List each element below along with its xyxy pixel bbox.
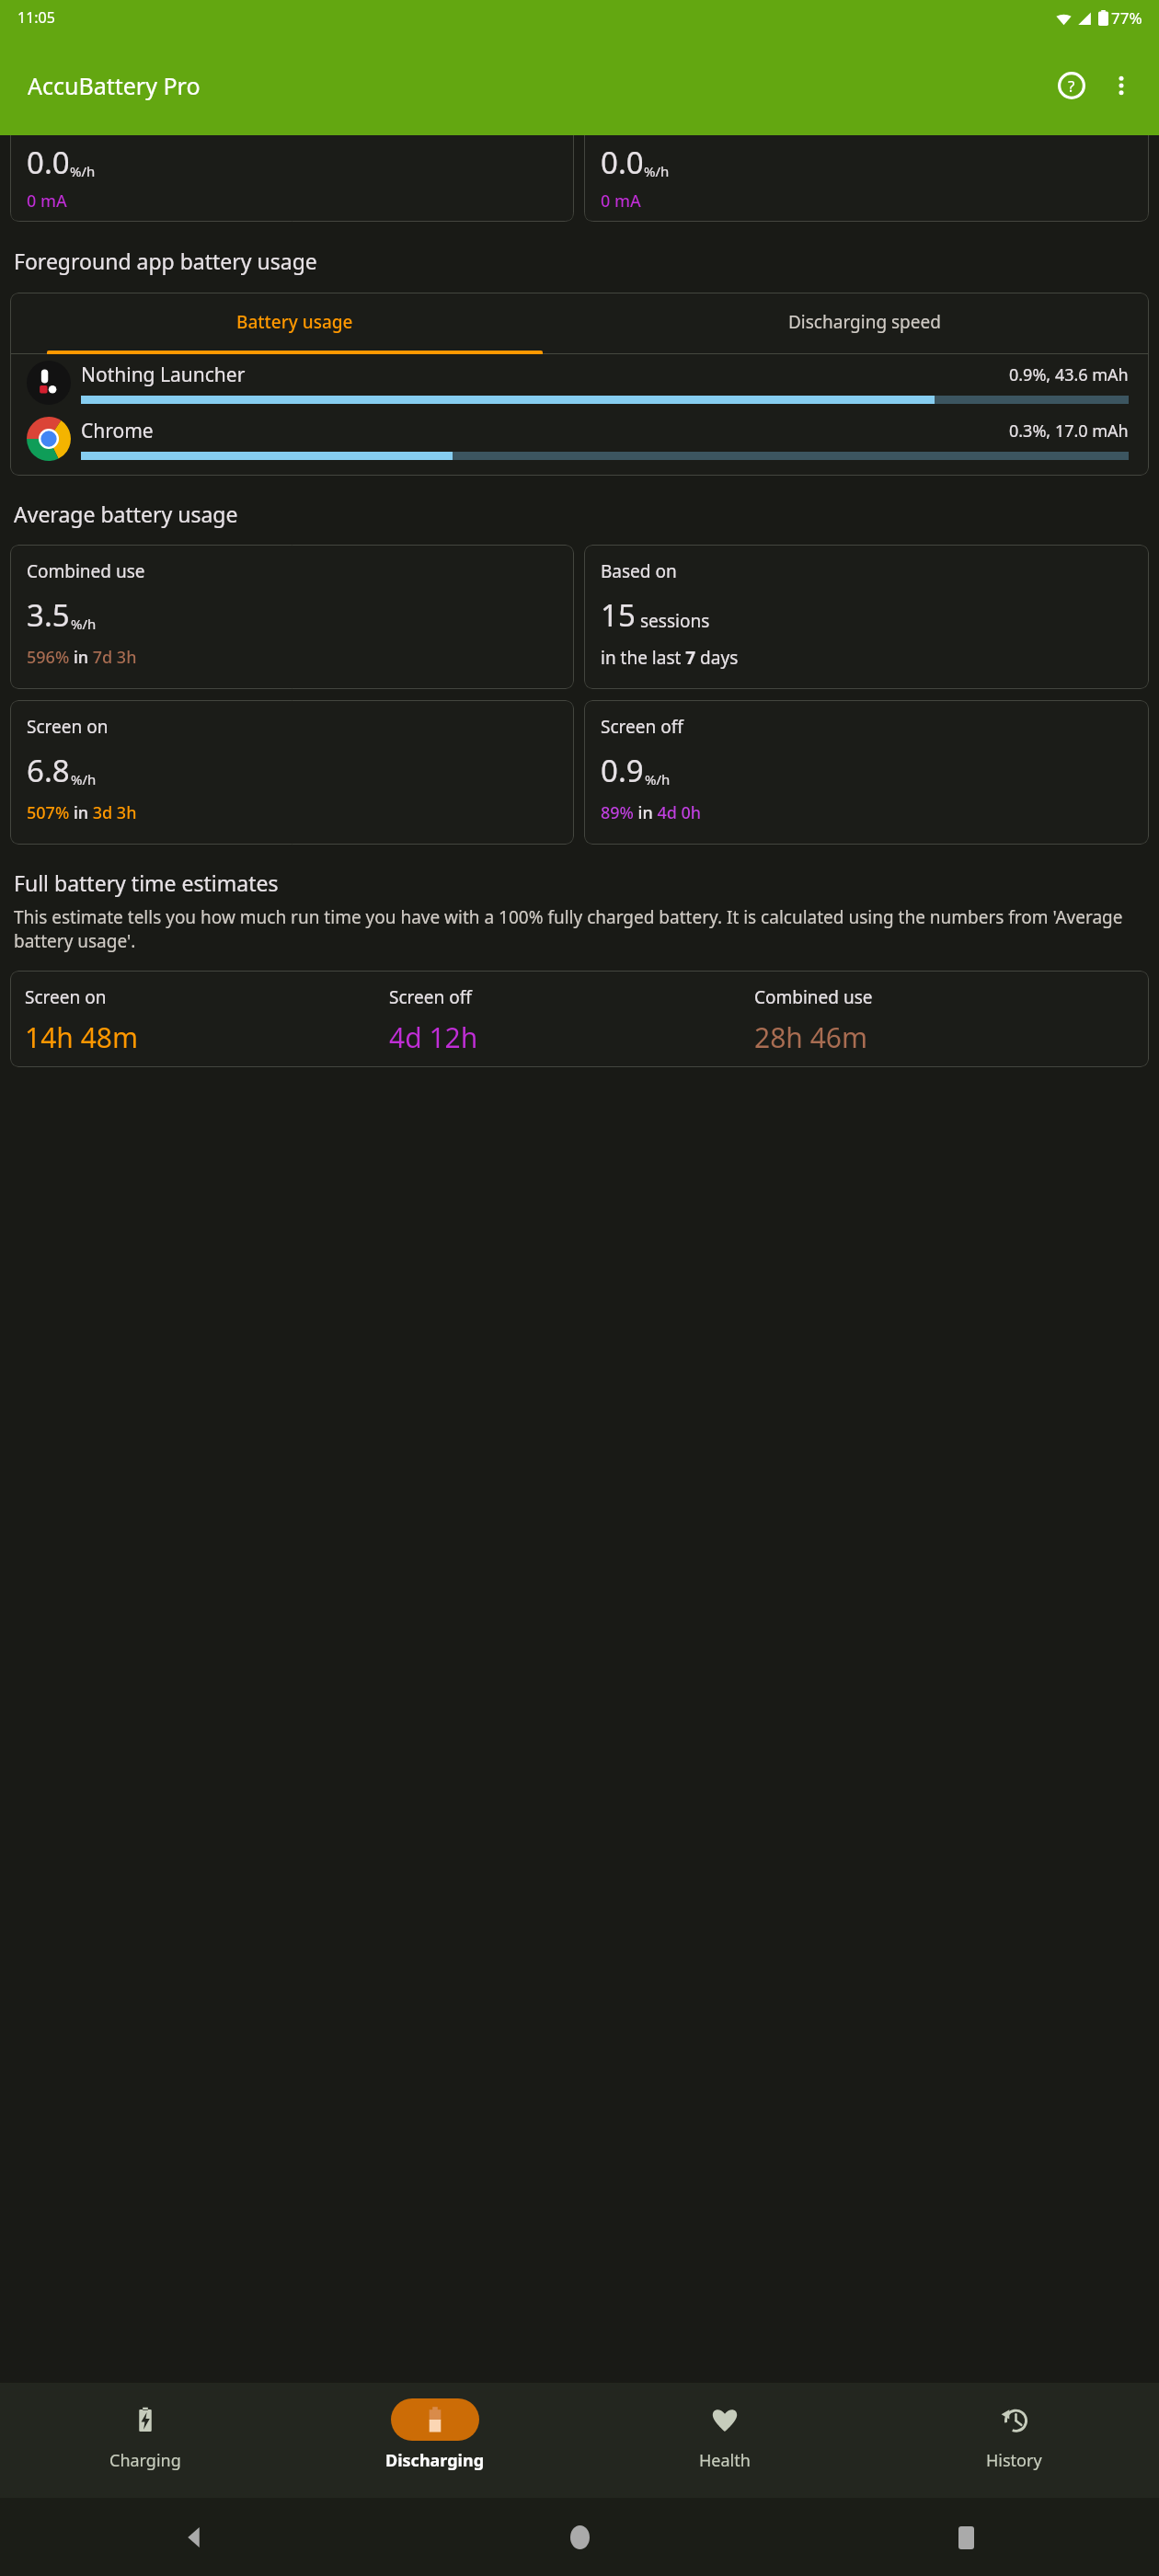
- button[interactable]: Discharging: [290, 2383, 579, 2498]
- staticText: %/h: [645, 770, 671, 788]
- staticText: 77%: [1111, 7, 1142, 29]
- staticText: 15: [601, 594, 636, 636]
- staticText: Health: [699, 2449, 751, 2472]
- staticText: Screen off: [601, 715, 683, 739]
- button[interactable]: Screen on: [10, 971, 1149, 1067]
- staticText: Average battery usage: [14, 500, 238, 528]
- staticText: 0.3%, 17.0 mAh: [1009, 420, 1129, 443]
- staticText: Nothing Launcher: [81, 362, 246, 388]
- button[interactable]: Screen on: [10, 700, 574, 845]
- staticText: 596% in 7d 3h: [27, 646, 137, 669]
- staticText: 0.0: [601, 142, 644, 183]
- staticText: 0.9%, 43.6 mAh: [1009, 363, 1129, 386]
- button[interactable]: Back: [166, 2511, 220, 2564]
- staticText: 4d 12h: [389, 1018, 478, 1056]
- staticText: %/h: [71, 615, 97, 633]
- staticText: 28h 46m: [754, 1018, 868, 1056]
- staticText: Full battery time estimates: [14, 868, 279, 897]
- staticText: Battery usage: [236, 310, 353, 334]
- staticText: Chrome: [81, 418, 154, 444]
- button[interactable]: Discharging speed: [579, 293, 1149, 351]
- staticText: %/h: [70, 162, 96, 180]
- staticText: AccuBattery Pro: [28, 70, 201, 101]
- button[interactable]: Health: [579, 2383, 869, 2498]
- staticText: 3.5: [27, 594, 70, 636]
- staticText: Combined use: [27, 559, 145, 583]
- staticText: 6.8: [27, 750, 70, 791]
- staticText: Foreground app battery usage: [14, 247, 317, 275]
- button[interactable]: Battery usage: [10, 293, 579, 351]
- staticText: Based on: [601, 559, 677, 583]
- button[interactable]: Recents: [939, 2511, 993, 2564]
- button[interactable]: Screen off: [584, 700, 1149, 845]
- staticText: 0.9: [601, 750, 644, 791]
- staticText: Charging: [109, 2449, 181, 2472]
- staticText: ?: [1068, 75, 1075, 97]
- staticText: Discharging: [385, 2449, 485, 2472]
- staticText: 0.0: [27, 142, 70, 183]
- staticText: Combined use: [754, 985, 873, 1009]
- button[interactable]: Chrome: [10, 410, 1149, 466]
- staticText: Screen on: [27, 715, 109, 739]
- staticText: Screen off: [389, 985, 472, 1009]
- staticText: 11:05: [17, 7, 55, 28]
- button[interactable]: Combined use: [10, 545, 574, 689]
- staticText: 14h 48m: [25, 1018, 139, 1056]
- staticText: in the last 7 days: [601, 646, 739, 670]
- staticText: 507% in 3d 3h: [27, 801, 137, 824]
- button[interactable]: Charging: [0, 2383, 290, 2498]
- staticText: Discharging speed: [788, 310, 941, 334]
- button[interactable]: History: [869, 2383, 1159, 2498]
- staticText: %/h: [644, 162, 670, 180]
- staticText: 0 mA: [27, 190, 67, 213]
- staticText: Screen on: [25, 985, 107, 1009]
- staticText: History: [986, 2449, 1042, 2472]
- button[interactable]: Help: [1047, 61, 1096, 110]
- staticText: sessions: [640, 609, 710, 633]
- button[interactable]: Nothing Launcher: [10, 354, 1149, 410]
- staticText: 89% in 4d 0h: [601, 801, 702, 824]
- staticText: This estimate tells you how much run tim…: [14, 905, 1143, 952]
- button[interactable]: 0.0: [10, 135, 574, 222]
- button[interactable]: Based on: [584, 545, 1149, 689]
- button[interactable]: 0.0: [584, 135, 1149, 222]
- staticText: 0 mA: [601, 190, 641, 213]
- staticText: %/h: [71, 770, 97, 788]
- button[interactable]: Home: [553, 2511, 606, 2564]
- button[interactable]: More options: [1096, 61, 1146, 110]
